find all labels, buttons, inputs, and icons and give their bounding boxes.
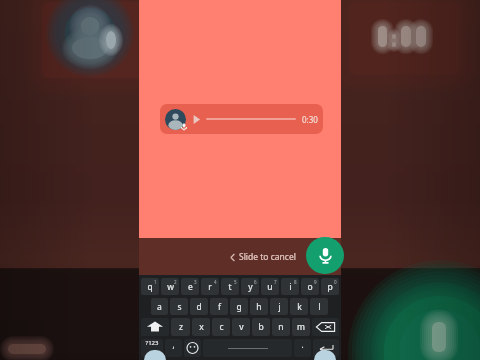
staticText: p (327, 281, 333, 293)
button[interactable]: Symbols (141, 339, 163, 357)
staticText: a (157, 301, 162, 313)
button[interactable]: Shift (141, 318, 169, 336)
button[interactable]: v (232, 318, 250, 336)
staticText: f (218, 301, 221, 313)
button[interactable]: Slide to cancel (226, 247, 299, 267)
staticText: v (239, 321, 244, 333)
button[interactable]: Space (203, 339, 292, 357)
staticText: 3 (194, 279, 197, 285)
button[interactable]: q (141, 278, 159, 295)
staticText: 2 (174, 279, 177, 285)
button[interactable]: s (170, 298, 188, 315)
staticText: n (278, 321, 284, 333)
button[interactable]: t (221, 278, 239, 295)
staticText: j (278, 301, 281, 313)
staticText: 8 (294, 279, 297, 285)
staticText: , (165, 339, 182, 357)
button[interactable]: u (261, 278, 279, 295)
staticText: c (219, 321, 224, 333)
staticText: 4 (214, 279, 217, 285)
button[interactable]: m (292, 318, 310, 336)
staticText: d (196, 301, 202, 313)
staticText: g (236, 301, 242, 313)
staticText: t (228, 281, 232, 293)
button[interactable]: x (192, 318, 210, 336)
staticText: y (248, 281, 253, 293)
staticText: l (318, 301, 321, 313)
button[interactable]: y (241, 278, 259, 295)
button[interactable]: o (301, 278, 319, 295)
button[interactable]: d (190, 298, 208, 315)
staticText: k (297, 301, 302, 313)
staticText: e (188, 281, 193, 293)
button[interactable]: z (171, 318, 190, 336)
button[interactable]: Emoji (184, 339, 201, 357)
staticText: x (199, 321, 204, 333)
button[interactable]: e (181, 278, 199, 295)
staticText: . (294, 339, 311, 357)
button[interactable]: w (161, 278, 179, 295)
button[interactable]: a (151, 298, 168, 315)
staticText: q (147, 281, 153, 293)
button[interactable]: Recording voice message (306, 237, 344, 274)
button[interactable]: b (252, 318, 270, 336)
staticText: u (267, 281, 273, 293)
button[interactable]: c (212, 318, 230, 336)
button[interactable]: j (270, 298, 288, 315)
button[interactable]: Comma (165, 339, 182, 357)
button[interactable]: n (272, 318, 290, 336)
button[interactable]: Period (294, 339, 311, 357)
button[interactable]: g (230, 298, 248, 315)
button[interactable]: f (210, 298, 228, 315)
staticText: 0:30 (302, 114, 318, 125)
staticText: b (258, 321, 264, 333)
staticText: Slide to cancel (239, 251, 296, 263)
staticText: r (208, 281, 212, 293)
staticText: w (167, 281, 174, 293)
button[interactable]: p (321, 278, 339, 295)
button[interactable]: h (250, 298, 268, 315)
staticText: h (256, 301, 262, 313)
button[interactable]: k (290, 298, 308, 315)
staticText: 1 (154, 279, 157, 285)
button[interactable]: Enter (313, 339, 339, 357)
staticText: o (307, 281, 313, 293)
button[interactable]: r (201, 278, 219, 295)
staticText: 7 (274, 279, 277, 285)
button[interactable]: l (310, 298, 328, 315)
staticText: i (289, 281, 292, 293)
button[interactable]: i (281, 278, 299, 295)
staticText: m (297, 321, 305, 333)
staticText: 9 (314, 279, 317, 285)
staticText: 5 (234, 279, 237, 285)
button[interactable]: 0:30 (160, 104, 323, 134)
staticText: z (179, 321, 183, 333)
staticText: s (177, 301, 182, 313)
button[interactable]: Backspace (312, 318, 339, 336)
staticText: 6 (254, 279, 257, 285)
staticText: 0 (334, 279, 337, 285)
staticText: ?123 (141, 339, 163, 357)
